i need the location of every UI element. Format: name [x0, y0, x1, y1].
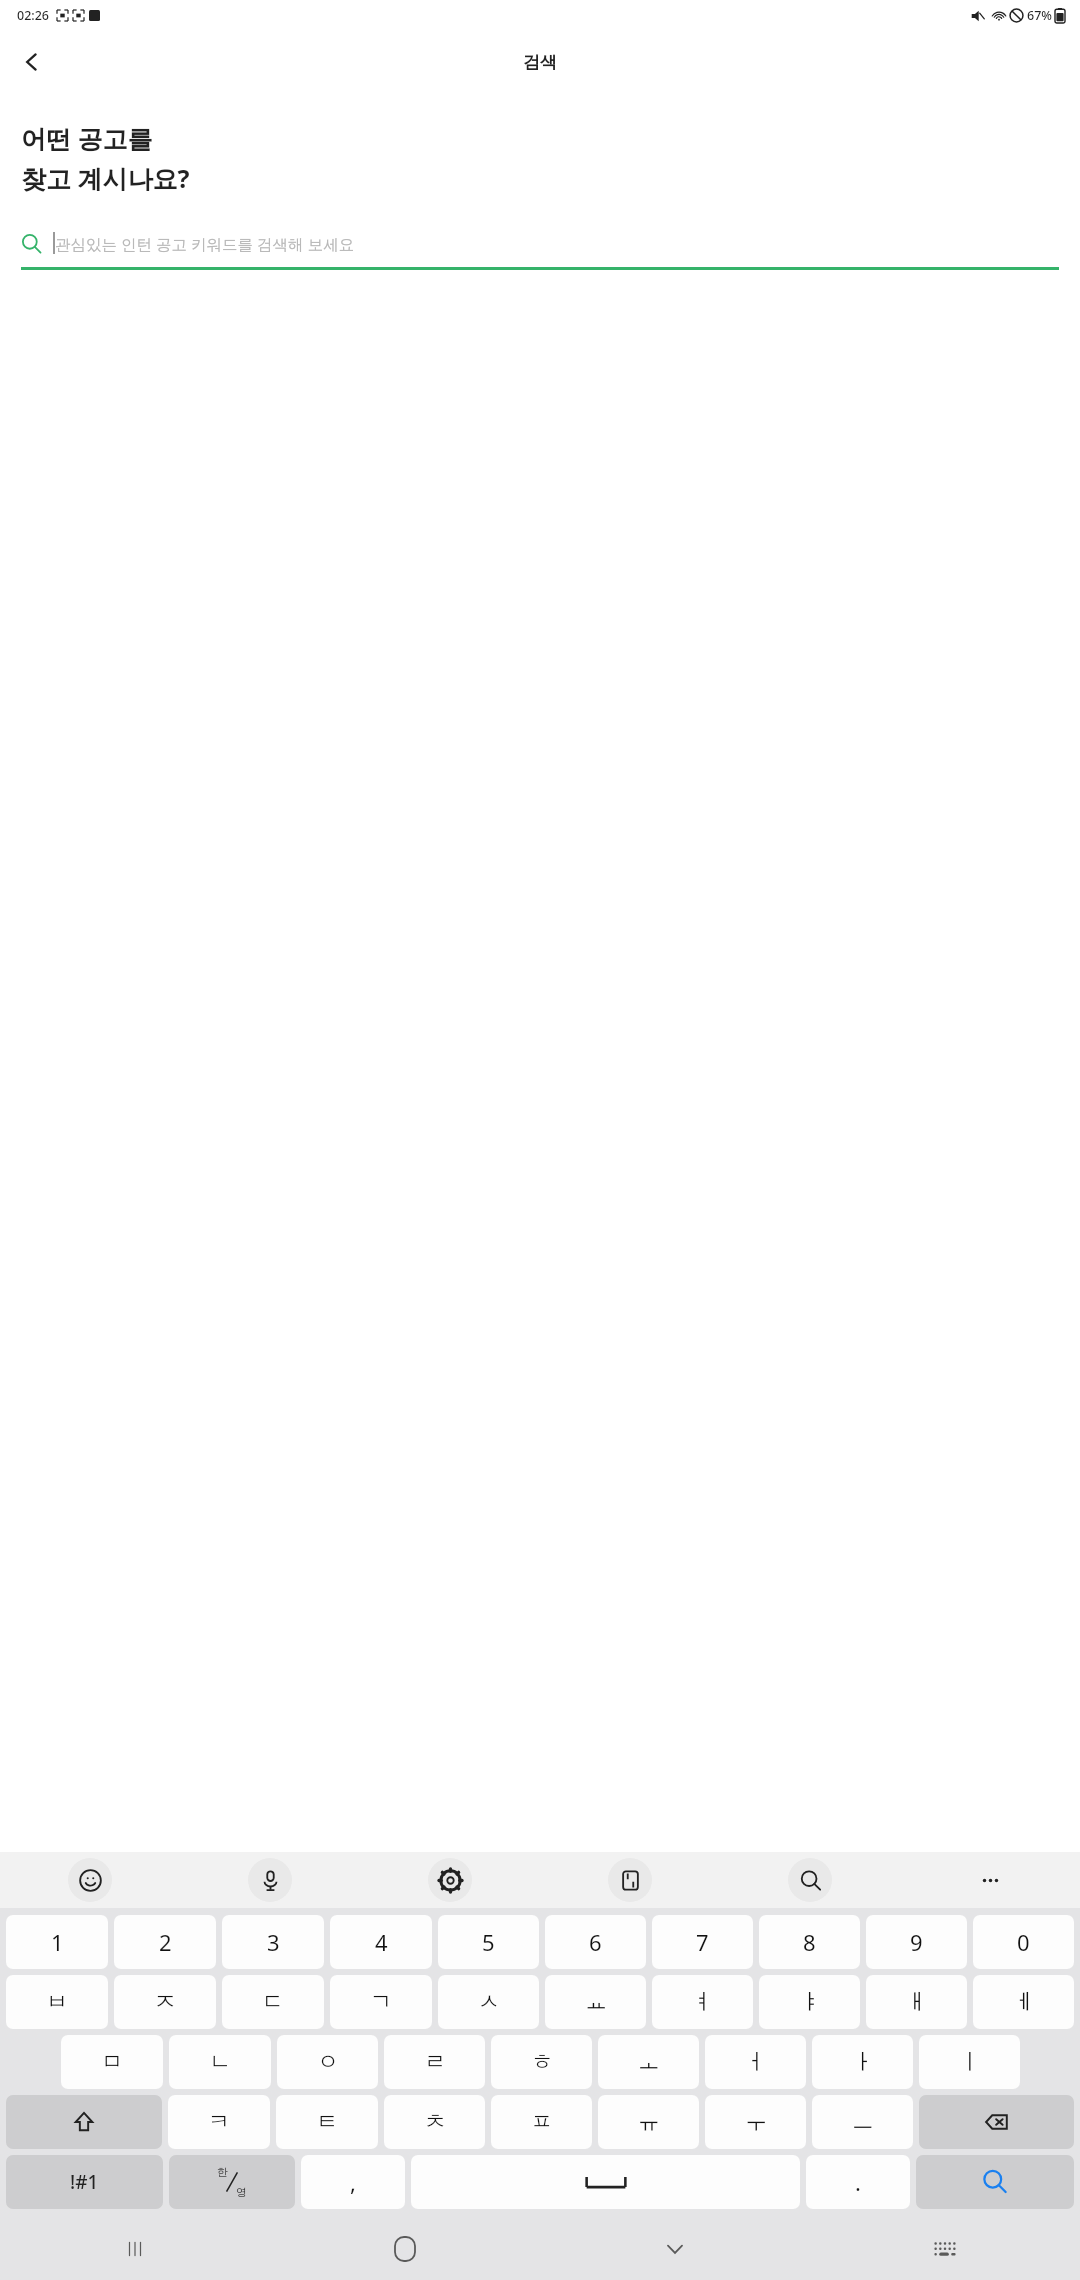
staticText: ㄴ	[209, 2048, 231, 2076]
button[interactable]: More options	[900, 1852, 1080, 1908]
staticText: 7	[696, 1927, 709, 1957]
staticText: !#1	[70, 2169, 99, 2195]
staticText: ,	[350, 2167, 356, 2197]
staticText: 8	[803, 1927, 816, 1957]
staticText: ㅑ	[799, 1988, 821, 2016]
staticText: ㅓ	[745, 2048, 767, 2076]
staticText: ㄹ	[424, 2048, 446, 2076]
staticText: 검색	[523, 52, 557, 73]
button[interactable]: Home	[270, 2218, 540, 2280]
button[interactable]: Search	[720, 1852, 900, 1908]
button[interactable]: 5	[438, 1915, 539, 1969]
button[interactable]: 2	[114, 1915, 216, 1969]
button[interactable]: Keyboard settings	[360, 1852, 540, 1908]
button[interactable]: 9	[866, 1915, 967, 1969]
staticText: 6	[589, 1927, 602, 1957]
button[interactable]: 6	[545, 1915, 646, 1969]
staticText: ㅊ	[424, 2108, 446, 2136]
button[interactable]: ㅐ	[866, 1975, 967, 2029]
staticText: ㅍ	[531, 2108, 553, 2136]
button[interactable]: ㅏ	[812, 2035, 913, 2089]
button[interactable]: ㅋ	[168, 2095, 270, 2149]
button[interactable]: ㅣ	[919, 2035, 1020, 2089]
button[interactable]: ㅌ	[276, 2095, 378, 2149]
button[interactable]: ㅠ	[598, 2095, 699, 2149]
button[interactable]: ㅛ	[545, 1975, 646, 2029]
button[interactable]: ㄱ	[330, 1975, 432, 2029]
button[interactable]: Translate	[540, 1852, 720, 1908]
button[interactable]: Recent apps	[0, 2218, 270, 2280]
button[interactable]: ㄹ	[384, 2035, 485, 2089]
staticText: 관심있는 인턴 공고 키워드를 검색해 보세요	[55, 233, 355, 254]
button[interactable]: ㅊ	[384, 2095, 485, 2149]
button[interactable]: 8	[759, 1915, 860, 1969]
button[interactable]: Backspace	[919, 2095, 1074, 2149]
staticText: 4	[375, 1927, 388, 1957]
button[interactable]: ㅜ	[705, 2095, 806, 2149]
button[interactable]: ㅈ	[114, 1975, 216, 2029]
staticText: ㅅ	[478, 1988, 500, 2016]
staticText: 3	[267, 1927, 280, 1957]
staticText: ㅛ	[585, 1988, 607, 2016]
button[interactable]: Change keyboard	[810, 2218, 1080, 2280]
staticText: 영	[236, 2185, 247, 2199]
button[interactable]: ㅅ	[438, 1975, 539, 2029]
staticText: ㅁ	[101, 2048, 123, 2076]
button[interactable]: ㅁ	[61, 2035, 163, 2089]
staticText: 67%	[1027, 7, 1052, 24]
button[interactable]: ,	[301, 2155, 405, 2209]
staticText: 찾고 계시나요?	[21, 161, 190, 195]
button[interactable]	[6, 2095, 162, 2149]
button[interactable]: ㅑ	[759, 1975, 860, 2029]
staticText: 9	[910, 1927, 923, 1957]
staticText: 2	[159, 1927, 172, 1957]
button[interactable]: 1	[6, 1915, 108, 1969]
button[interactable]: !#1	[6, 2155, 163, 2209]
staticText: ㅌ	[316, 2108, 338, 2136]
button[interactable]: Emoji	[0, 1852, 180, 1908]
button[interactable]: .	[806, 2155, 910, 2209]
button[interactable]: ㅇ	[277, 2035, 378, 2089]
button[interactable]: ㅍ	[491, 2095, 592, 2149]
staticText: 0	[1017, 1927, 1030, 1957]
button[interactable]: ㅎ	[491, 2035, 592, 2089]
button[interactable]: 한	[169, 2155, 295, 2209]
staticText: ㅋ	[208, 2108, 230, 2136]
staticText: ㄱ	[370, 1988, 392, 2016]
button[interactable]: ㅂ	[6, 1975, 108, 2029]
button[interactable]: 관심있는 인턴 공고 키워드를 검색해 보세요	[21, 223, 1059, 270]
button[interactable]: 7	[652, 1915, 753, 1969]
button[interactable]: 3	[222, 1915, 324, 1969]
staticText: 한	[217, 2165, 228, 2179]
button[interactable]: ㅔ	[973, 1975, 1074, 2029]
button[interactable]: Back	[8, 38, 56, 86]
staticText: 어떤 공고를	[21, 121, 153, 155]
button[interactable]: Search	[916, 2155, 1074, 2209]
staticText: ㅗ	[638, 2048, 660, 2076]
staticText: ㅔ	[1013, 1988, 1035, 2016]
staticText: 1	[51, 1927, 64, 1957]
button[interactable]: Hide keyboard	[540, 2218, 810, 2280]
staticText: ㅡ	[852, 2108, 874, 2136]
button[interactable]: ㅡ	[812, 2095, 913, 2149]
button[interactable]: ㅗ	[598, 2035, 699, 2089]
staticText: ㅜ	[745, 2108, 767, 2136]
button[interactable]: 0	[973, 1915, 1074, 1969]
button[interactable]: 4	[330, 1915, 432, 1969]
staticText: ㅂ	[46, 1988, 68, 2016]
staticText: ㅣ	[959, 2048, 981, 2076]
staticText: ㅇ	[317, 2048, 339, 2076]
staticText: ㅠ	[638, 2108, 660, 2136]
button[interactable]: ㅕ	[652, 1975, 753, 2029]
staticText: ㅕ	[692, 1988, 714, 2016]
staticText: ㅐ	[906, 1988, 928, 2016]
button[interactable]: Voice input	[180, 1852, 360, 1908]
button[interactable]: ㅓ	[705, 2035, 806, 2089]
staticText: ㅏ	[852, 2048, 874, 2076]
staticText: .	[855, 2167, 861, 2197]
button[interactable]: Space	[411, 2155, 800, 2209]
staticText: ㅎ	[531, 2048, 553, 2076]
staticText: ㄷ	[262, 1988, 284, 2016]
button[interactable]: ㄴ	[169, 2035, 271, 2089]
button[interactable]: ㄷ	[222, 1975, 324, 2029]
